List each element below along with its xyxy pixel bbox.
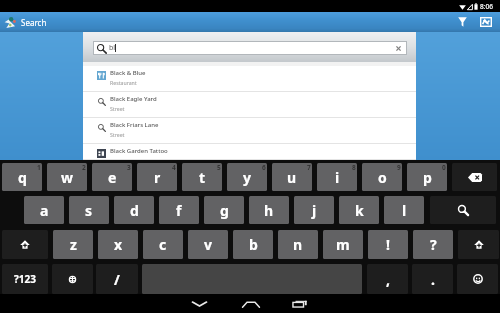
button[interactable]: w — [47, 163, 87, 191]
staticText: d — [130, 201, 139, 220]
button[interactable]: / — [96, 264, 138, 294]
staticText: / — [114, 270, 120, 289]
staticText: Street — [110, 131, 125, 138]
staticText: c — [159, 235, 167, 254]
button[interactable]: ?123 — [2, 264, 48, 294]
staticText: Black & Blue — [110, 69, 146, 77]
staticText: Search — [21, 17, 47, 28]
button[interactable]: g — [204, 196, 244, 224]
staticText: a — [40, 201, 49, 220]
staticText: i — [335, 168, 340, 187]
button[interactable]: Backspace — [452, 163, 497, 191]
button[interactable]: v — [188, 230, 228, 259]
button[interactable]: bl — [93, 41, 407, 55]
button[interactable]: e — [92, 163, 132, 191]
button[interactable]: Recent apps — [275, 294, 325, 313]
staticText: ! — [386, 235, 390, 254]
staticText: Street — [110, 105, 125, 112]
staticText: e — [108, 168, 117, 187]
staticText: j — [312, 201, 317, 220]
button[interactable]: c — [143, 230, 183, 259]
button[interactable]: k — [339, 196, 379, 224]
button[interactable]: h — [249, 196, 289, 224]
staticText: t — [199, 168, 206, 187]
staticText: Restaurant — [110, 79, 137, 86]
staticText: bl — [109, 43, 116, 53]
button[interactable]: ! — [368, 230, 408, 259]
staticText: m — [336, 235, 350, 254]
staticText: s — [85, 201, 93, 220]
staticText: q — [18, 168, 27, 187]
staticText: l — [402, 201, 407, 220]
button[interactable]: Home — [226, 294, 276, 313]
button[interactable]: ? — [413, 230, 453, 259]
staticText: Black Eagle Yard — [110, 95, 157, 103]
button[interactable]: . — [412, 264, 453, 294]
button[interactable]: t — [182, 163, 222, 191]
button[interactable]: Black Friars Lane — [83, 118, 416, 144]
staticText: v — [204, 235, 212, 254]
button[interactable]: Black & Blue — [83, 66, 416, 92]
button[interactable]: o — [362, 163, 402, 191]
button[interactable]: p — [407, 163, 447, 191]
staticText: z — [70, 235, 77, 254]
button[interactable]: Black Eagle Yard — [83, 92, 416, 118]
button[interactable]: Filter — [452, 12, 472, 32]
button[interactable]: Shift — [2, 230, 48, 259]
button[interactable]: d — [114, 196, 154, 224]
button[interactable]: b — [233, 230, 273, 259]
button[interactable]: m — [323, 230, 363, 259]
button[interactable]: q — [2, 163, 42, 191]
button[interactable]: y — [227, 163, 267, 191]
button[interactable]: Black Garden Tattoo — [83, 144, 416, 160]
staticText: 1 — [37, 163, 41, 172]
button[interactable]: x — [98, 230, 138, 259]
button[interactable]: l — [384, 196, 424, 224]
staticText: b — [249, 235, 258, 254]
staticText: 4 — [172, 163, 176, 172]
staticText: 8:06 — [480, 2, 493, 11]
button[interactable]: u — [272, 163, 312, 191]
staticText: o — [378, 168, 387, 187]
button[interactable]: a — [24, 196, 64, 224]
staticText: 9 — [397, 163, 401, 172]
staticText: w — [61, 168, 73, 187]
staticText: r — [154, 168, 161, 187]
button[interactable]: Emoji — [457, 264, 498, 294]
staticText: Black Garden Tattoo — [110, 147, 168, 155]
staticText: h — [264, 201, 274, 220]
button[interactable]: s — [69, 196, 109, 224]
staticText: k — [355, 201, 364, 220]
staticText: 3 — [127, 163, 131, 172]
staticText: ?123 — [14, 272, 36, 286]
staticText: ? — [430, 235, 437, 254]
staticText: 8 — [352, 163, 356, 172]
staticText: . — [431, 270, 435, 289]
staticText: g — [220, 201, 229, 220]
button[interactable]: z — [53, 230, 93, 259]
staticText: n — [293, 235, 303, 254]
button[interactable]: r — [137, 163, 177, 191]
staticText: u — [287, 168, 297, 187]
button[interactable]: f — [159, 196, 199, 224]
staticText: , — [386, 270, 390, 289]
staticText: 5 — [217, 163, 221, 172]
staticText: 7 — [307, 163, 311, 172]
staticText: 0 — [442, 163, 446, 172]
button[interactable]: Shift — [458, 230, 499, 259]
button[interactable]: Search — [430, 196, 496, 224]
button[interactable]: i — [317, 163, 357, 191]
staticText: 6 — [262, 163, 266, 172]
staticText: y — [243, 168, 251, 187]
button[interactable]: Language — [52, 264, 93, 294]
staticText: Black Friars Lane — [110, 121, 159, 129]
button[interactable]: n — [278, 230, 318, 259]
button[interactable]: Clear search — [395, 45, 402, 52]
button[interactable]: Street view — [476, 12, 496, 32]
button[interactable]: Back — [174, 294, 224, 313]
staticText: x — [114, 235, 123, 254]
staticText: p — [423, 168, 432, 187]
button[interactable]: , — [367, 264, 408, 294]
button[interactable]: j — [294, 196, 334, 224]
